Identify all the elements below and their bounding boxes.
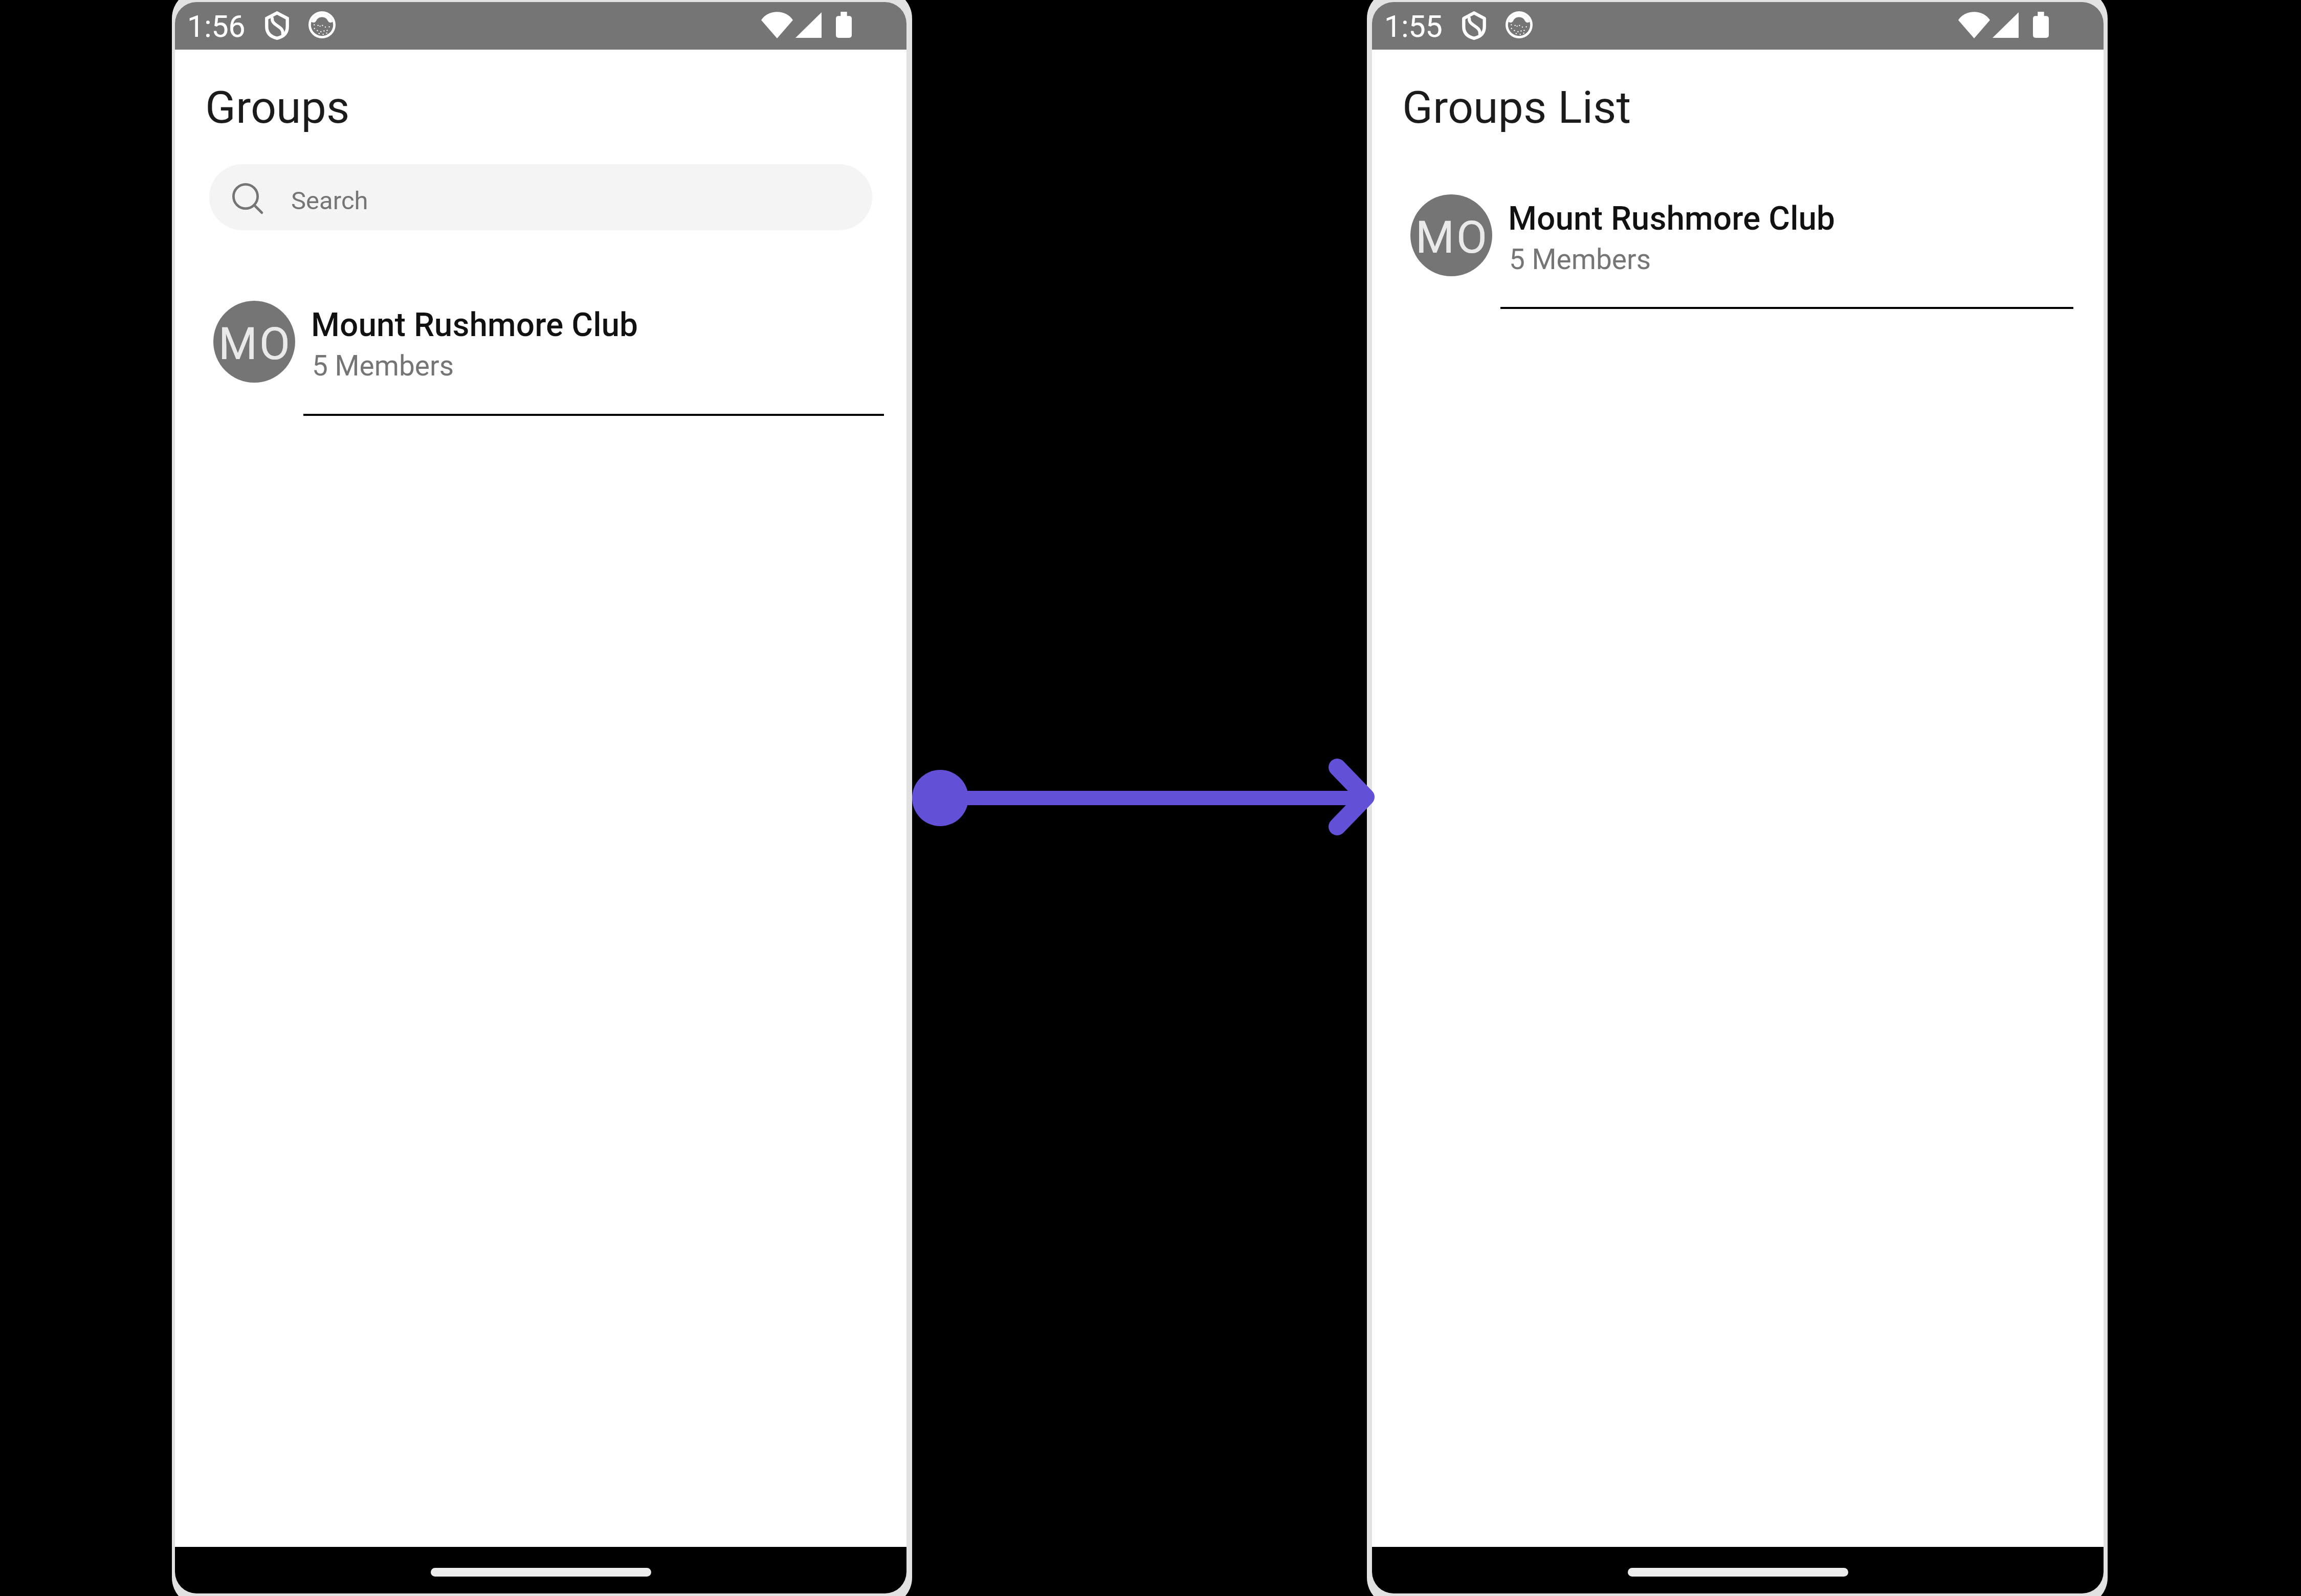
button[interactable]: MO [1372, 182, 2104, 309]
staticText: 5 Members [312, 349, 454, 382]
staticText: Search [291, 186, 368, 215]
staticText: MO [218, 318, 292, 370]
staticText: Groups List [1402, 81, 1631, 134]
button[interactable]: Search [209, 164, 872, 230]
other: Home [431, 1568, 651, 1577]
other: Navigates to [0, 0, 2301, 1596]
other: Home [1628, 1568, 1848, 1577]
other: Search [232, 183, 262, 213]
button[interactable]: MO [175, 288, 906, 416]
staticText: 5 Members [1509, 243, 1651, 276]
staticText: Mount Rushmore Club [311, 306, 638, 344]
staticText: Groups [205, 81, 350, 134]
staticText: Mount Rushmore Club [1508, 199, 1835, 238]
staticText: MO [1415, 211, 1489, 263]
staticText: 1:55 [1384, 9, 1443, 44]
staticText: 1:56 [187, 9, 246, 44]
